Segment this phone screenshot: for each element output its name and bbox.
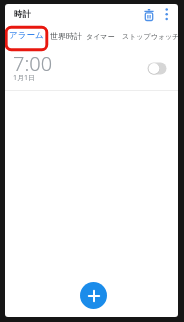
staticText: 7:00 <box>13 50 53 77</box>
button[interactable]: 7:00 <box>5 50 178 90</box>
button[interactable] <box>140 8 156 23</box>
staticText: 1月1日 <box>13 73 36 83</box>
button[interactable]: アラーム <box>5 26 48 51</box>
button[interactable] <box>80 282 107 309</box>
staticText: 時計 <box>14 9 31 20</box>
button[interactable] <box>161 7 173 22</box>
button[interactable]: タイマー <box>86 32 115 41</box>
button[interactable] <box>145 60 167 76</box>
button[interactable]: ストップウォッチ <box>122 32 178 41</box>
button[interactable]: 世界時計 <box>50 31 82 41</box>
staticText: アラーム <box>9 30 44 41</box>
